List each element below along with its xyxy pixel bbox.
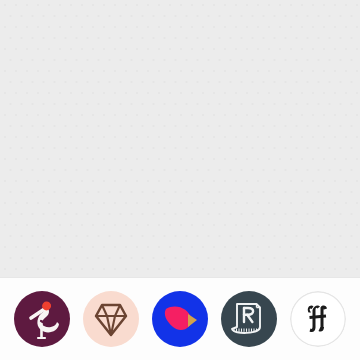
button[interactable]: Feather app	[152, 291, 208, 347]
button[interactable]: Scroll R app	[221, 291, 277, 347]
button[interactable]: Gothic F app	[290, 291, 346, 347]
button[interactable]: Sketch diamond app	[83, 291, 139, 347]
button[interactable]: Flamingo app	[14, 291, 70, 347]
